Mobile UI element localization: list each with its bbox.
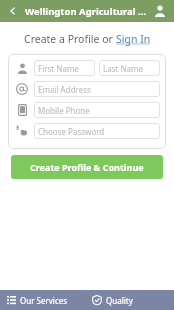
button[interactable]: Last Name xyxy=(99,60,160,76)
button[interactable]: Email Address xyxy=(34,81,160,97)
staticText: Wellington Agricultural Services... xyxy=(25,5,148,18)
button[interactable]: Choose Password xyxy=(34,123,160,139)
staticText: Choose Password xyxy=(38,126,105,137)
button[interactable]: Our Services xyxy=(0,290,87,310)
staticText: Mobile Phone xyxy=(38,105,90,116)
button[interactable]: Sign In xyxy=(116,32,151,46)
staticText: Create a Profile or xyxy=(24,32,116,46)
staticText: Sign In xyxy=(116,32,151,46)
button[interactable]: Mobile Phone xyxy=(34,102,160,118)
staticText: First Name xyxy=(38,63,79,74)
button[interactable]: Create Profile & Continue xyxy=(11,155,163,179)
staticText: Create Profile & Continue xyxy=(30,161,144,173)
staticText: Quality Guarantee xyxy=(106,295,174,306)
button[interactable]: First Name xyxy=(34,60,95,76)
button[interactable]: Quality Guarantee xyxy=(87,290,174,310)
button[interactable]: Account xyxy=(151,2,169,20)
staticText: Our Services xyxy=(20,295,68,306)
button[interactable]: Back xyxy=(5,3,21,19)
staticText: Last Name xyxy=(103,63,144,74)
staticText: Email Address xyxy=(38,84,91,95)
